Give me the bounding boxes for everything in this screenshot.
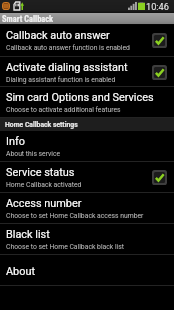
- staticText: Access number: [6, 197, 82, 210]
- staticText: Dialing assistant function is enabled: [6, 76, 116, 84]
- button[interactable]: Callback auto answer: [0, 25, 174, 57]
- staticText: Choose to set Home Callback access numbe…: [6, 212, 144, 220]
- button[interactable]: Access number: [0, 193, 174, 224]
- staticText: About: [6, 265, 35, 278]
- staticText: Black list: [6, 228, 50, 241]
- staticText: Callback auto answer function is enabled: [6, 44, 130, 52]
- staticText: Sim card Options and Services: [6, 91, 154, 104]
- staticText: Service status: [6, 166, 75, 179]
- staticText: About this service: [6, 150, 61, 158]
- button[interactable]: Activate dialing assistant: [0, 57, 174, 87]
- staticText: 10:46: [146, 1, 169, 12]
- button[interactable]: Smart Callback: [0, 13, 174, 24]
- staticText: Info: [6, 135, 25, 148]
- button[interactable]: Sim card Options and Services: [0, 87, 174, 118]
- button[interactable]: About: [0, 255, 174, 286]
- staticText: Choose to set Home Callback black list: [6, 243, 124, 251]
- staticText: Home Callback settings: [5, 121, 78, 129]
- staticText: Callback auto answer: [6, 29, 110, 42]
- staticText: Activate dialing assistant: [6, 61, 128, 74]
- staticText: Choose to activate additional features: [6, 106, 121, 114]
- button[interactable]: Info: [0, 131, 174, 162]
- staticText: Smart Callback: [2, 14, 54, 24]
- staticText: Home Callback activated: [6, 181, 82, 189]
- button[interactable]: Service status: [0, 162, 174, 193]
- button[interactable]: Black list: [0, 224, 174, 255]
